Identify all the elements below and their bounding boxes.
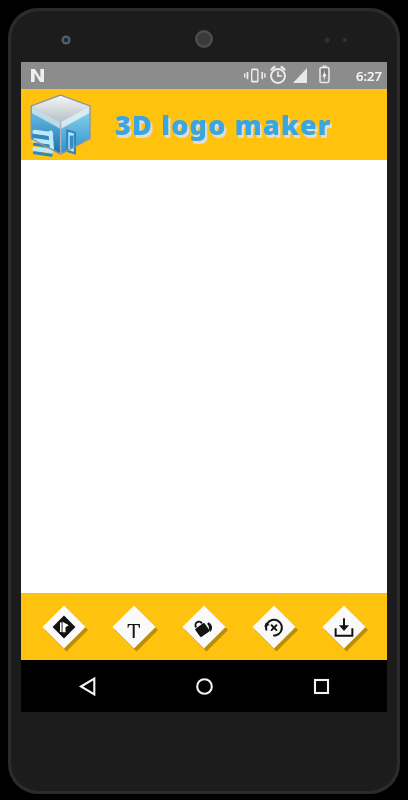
button[interactable]: Recent apps <box>299 664 343 708</box>
button[interactable]: Save <box>317 600 371 654</box>
staticText: 6:27 <box>356 67 382 85</box>
button[interactable]: Add text <box>107 600 161 654</box>
button[interactable]: Reset <box>247 600 301 654</box>
staticText: 3D logo maker <box>115 106 332 143</box>
button[interactable]: Back <box>65 664 109 708</box>
button[interactable]: Shape <box>37 600 91 654</box>
staticText: T <box>127 616 141 638</box>
button[interactable]: Home <box>182 664 226 708</box>
button[interactable]: Fill colour <box>177 600 231 654</box>
staticText: 3D logo maker <box>117 109 334 146</box>
